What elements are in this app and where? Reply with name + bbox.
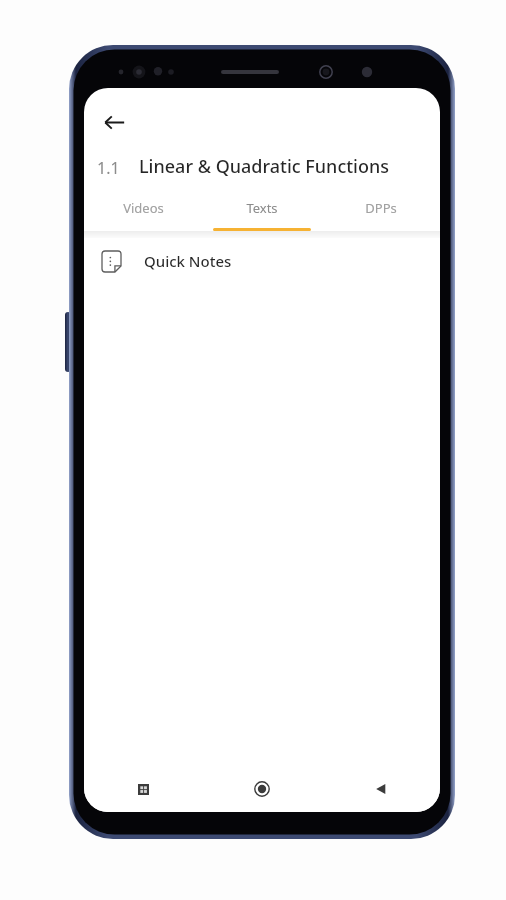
button[interactable]: DPPs bbox=[321, 196, 440, 231]
staticText: DPPs bbox=[365, 199, 397, 217]
button[interactable]: Videos bbox=[84, 196, 202, 231]
button[interactable]: Recents bbox=[84, 766, 202, 812]
button[interactable]: Note bbox=[84, 238, 440, 284]
button[interactable]: Back bbox=[92, 100, 136, 144]
button[interactable]: Texts bbox=[202, 196, 321, 231]
staticText: Videos bbox=[123, 199, 164, 217]
button[interactable]: Home bbox=[202, 766, 321, 812]
other: Note bbox=[102, 251, 121, 272]
button[interactable]: Back bbox=[321, 766, 440, 812]
staticText: Linear & Quadratic Functions bbox=[139, 154, 390, 179]
staticText: Quick Notes bbox=[144, 251, 232, 271]
staticText: Texts bbox=[246, 199, 278, 217]
staticText: 1.1 bbox=[97, 157, 120, 179]
